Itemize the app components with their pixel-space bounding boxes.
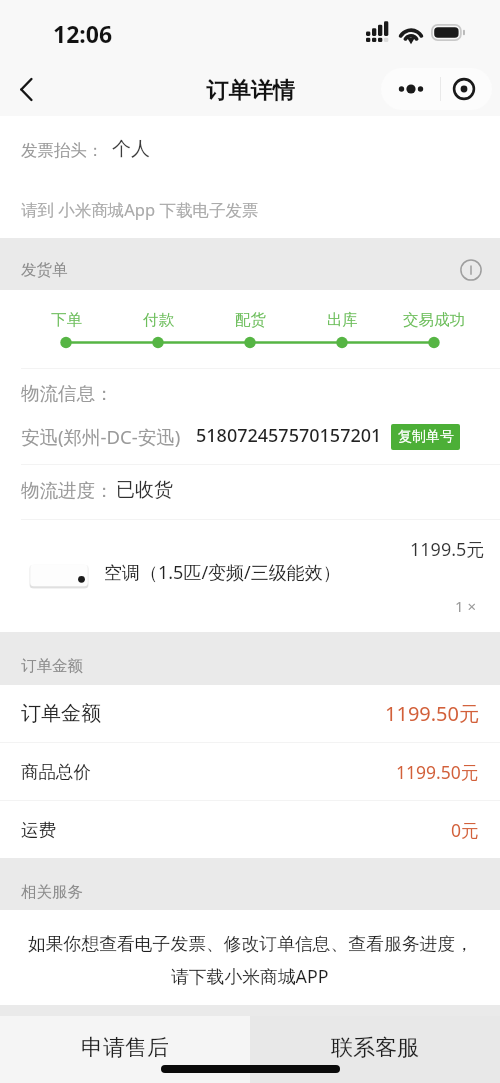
button[interactable]: 申请售后 (0, 1016, 250, 1083)
staticText: 12:06 (53, 18, 113, 49)
button[interactable]: 联系客服 (250, 1016, 500, 1083)
staticText: 商品总价 (21, 761, 91, 783)
staticText: 请下载小米商城APP (171, 964, 329, 988)
staticText: 1199.5元 (410, 537, 485, 562)
staticText: 请到 小米商城App 下载电子发票 (21, 198, 259, 221)
staticText: 如果你想查看电子发票、修改订单信息、查看服务进度， (28, 933, 473, 955)
staticText: 518072457570157201 (196, 423, 382, 448)
button[interactable]: 复制单号 (391, 424, 460, 450)
staticText: 相关服务 (21, 882, 83, 902)
staticText: 订单金额 (21, 656, 83, 676)
staticText: 订单详情 (206, 77, 295, 105)
staticText: 物流信息： (21, 382, 114, 405)
staticText: 出库 (327, 310, 358, 330)
staticText: 下单 (51, 310, 82, 330)
button[interactable]: 运费 (0, 801, 500, 858)
staticText: 物流进度： (21, 479, 114, 502)
button[interactable]: 返回 (0, 62, 54, 116)
staticText: 已收货 (116, 478, 173, 502)
staticText: 付款 (143, 310, 174, 330)
staticText: 1199.50元 (385, 700, 479, 727)
button[interactable]: 商品总价 (0, 743, 500, 800)
staticText: 申请售后 (81, 1034, 169, 1062)
staticText: 配货 (235, 310, 266, 330)
staticText: 空调（1.5匹/变频/三级能效） (104, 560, 341, 585)
button[interactable]: 说明 (460, 259, 482, 281)
button[interactable]: 更多 (381, 68, 440, 110)
staticText: 安迅(郑州-DC-安迅) (21, 424, 181, 449)
staticText: 联系客服 (331, 1034, 419, 1062)
staticText: 发票抬头： (21, 140, 104, 161)
staticText: 1199.50元 (396, 760, 479, 784)
staticText: 运费 (21, 819, 56, 841)
staticText: 复制单号 (398, 428, 454, 446)
staticText: 个人 (112, 137, 150, 161)
staticText: 交易成功 (403, 310, 465, 330)
staticText: 订单金额 (21, 701, 101, 726)
staticText: 发货单 (21, 260, 68, 280)
button[interactable]: 关闭小程序 (441, 68, 492, 110)
staticText: 1 × (455, 596, 477, 616)
staticText: 0元 (451, 818, 479, 842)
button[interactable]: 订单金额 (0, 685, 500, 742)
